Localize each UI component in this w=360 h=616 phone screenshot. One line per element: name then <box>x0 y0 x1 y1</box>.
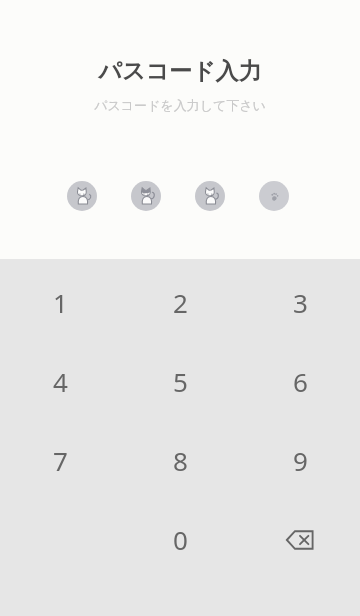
button[interactable]: 0 <box>120 500 240 579</box>
staticText: 2 <box>173 285 188 320</box>
staticText: 6 <box>293 364 308 399</box>
staticText: 3 <box>293 285 308 320</box>
button[interactable]: 6 <box>240 342 360 421</box>
button[interactable]: 3 <box>240 263 360 342</box>
staticText: 4 <box>53 364 68 399</box>
staticText: 1 <box>53 285 68 320</box>
staticText: 7 <box>53 443 68 478</box>
button[interactable]: 2 <box>120 263 240 342</box>
button[interactable]: 4 <box>0 342 120 421</box>
staticText: パスコード入力 <box>98 57 262 86</box>
button[interactable]: 7 <box>0 421 120 500</box>
button[interactable]: 5 <box>120 342 240 421</box>
button[interactable]: 1 <box>0 263 120 342</box>
staticText: 5 <box>173 364 188 399</box>
staticText: 0 <box>173 522 188 557</box>
staticText: 9 <box>293 443 308 478</box>
button[interactable]: Delete <box>240 500 360 579</box>
staticText: パスコードを入力して下さい <box>94 97 266 113</box>
button[interactable]: 9 <box>240 421 360 500</box>
button[interactable]: 8 <box>120 421 240 500</box>
staticText: 8 <box>173 443 188 478</box>
